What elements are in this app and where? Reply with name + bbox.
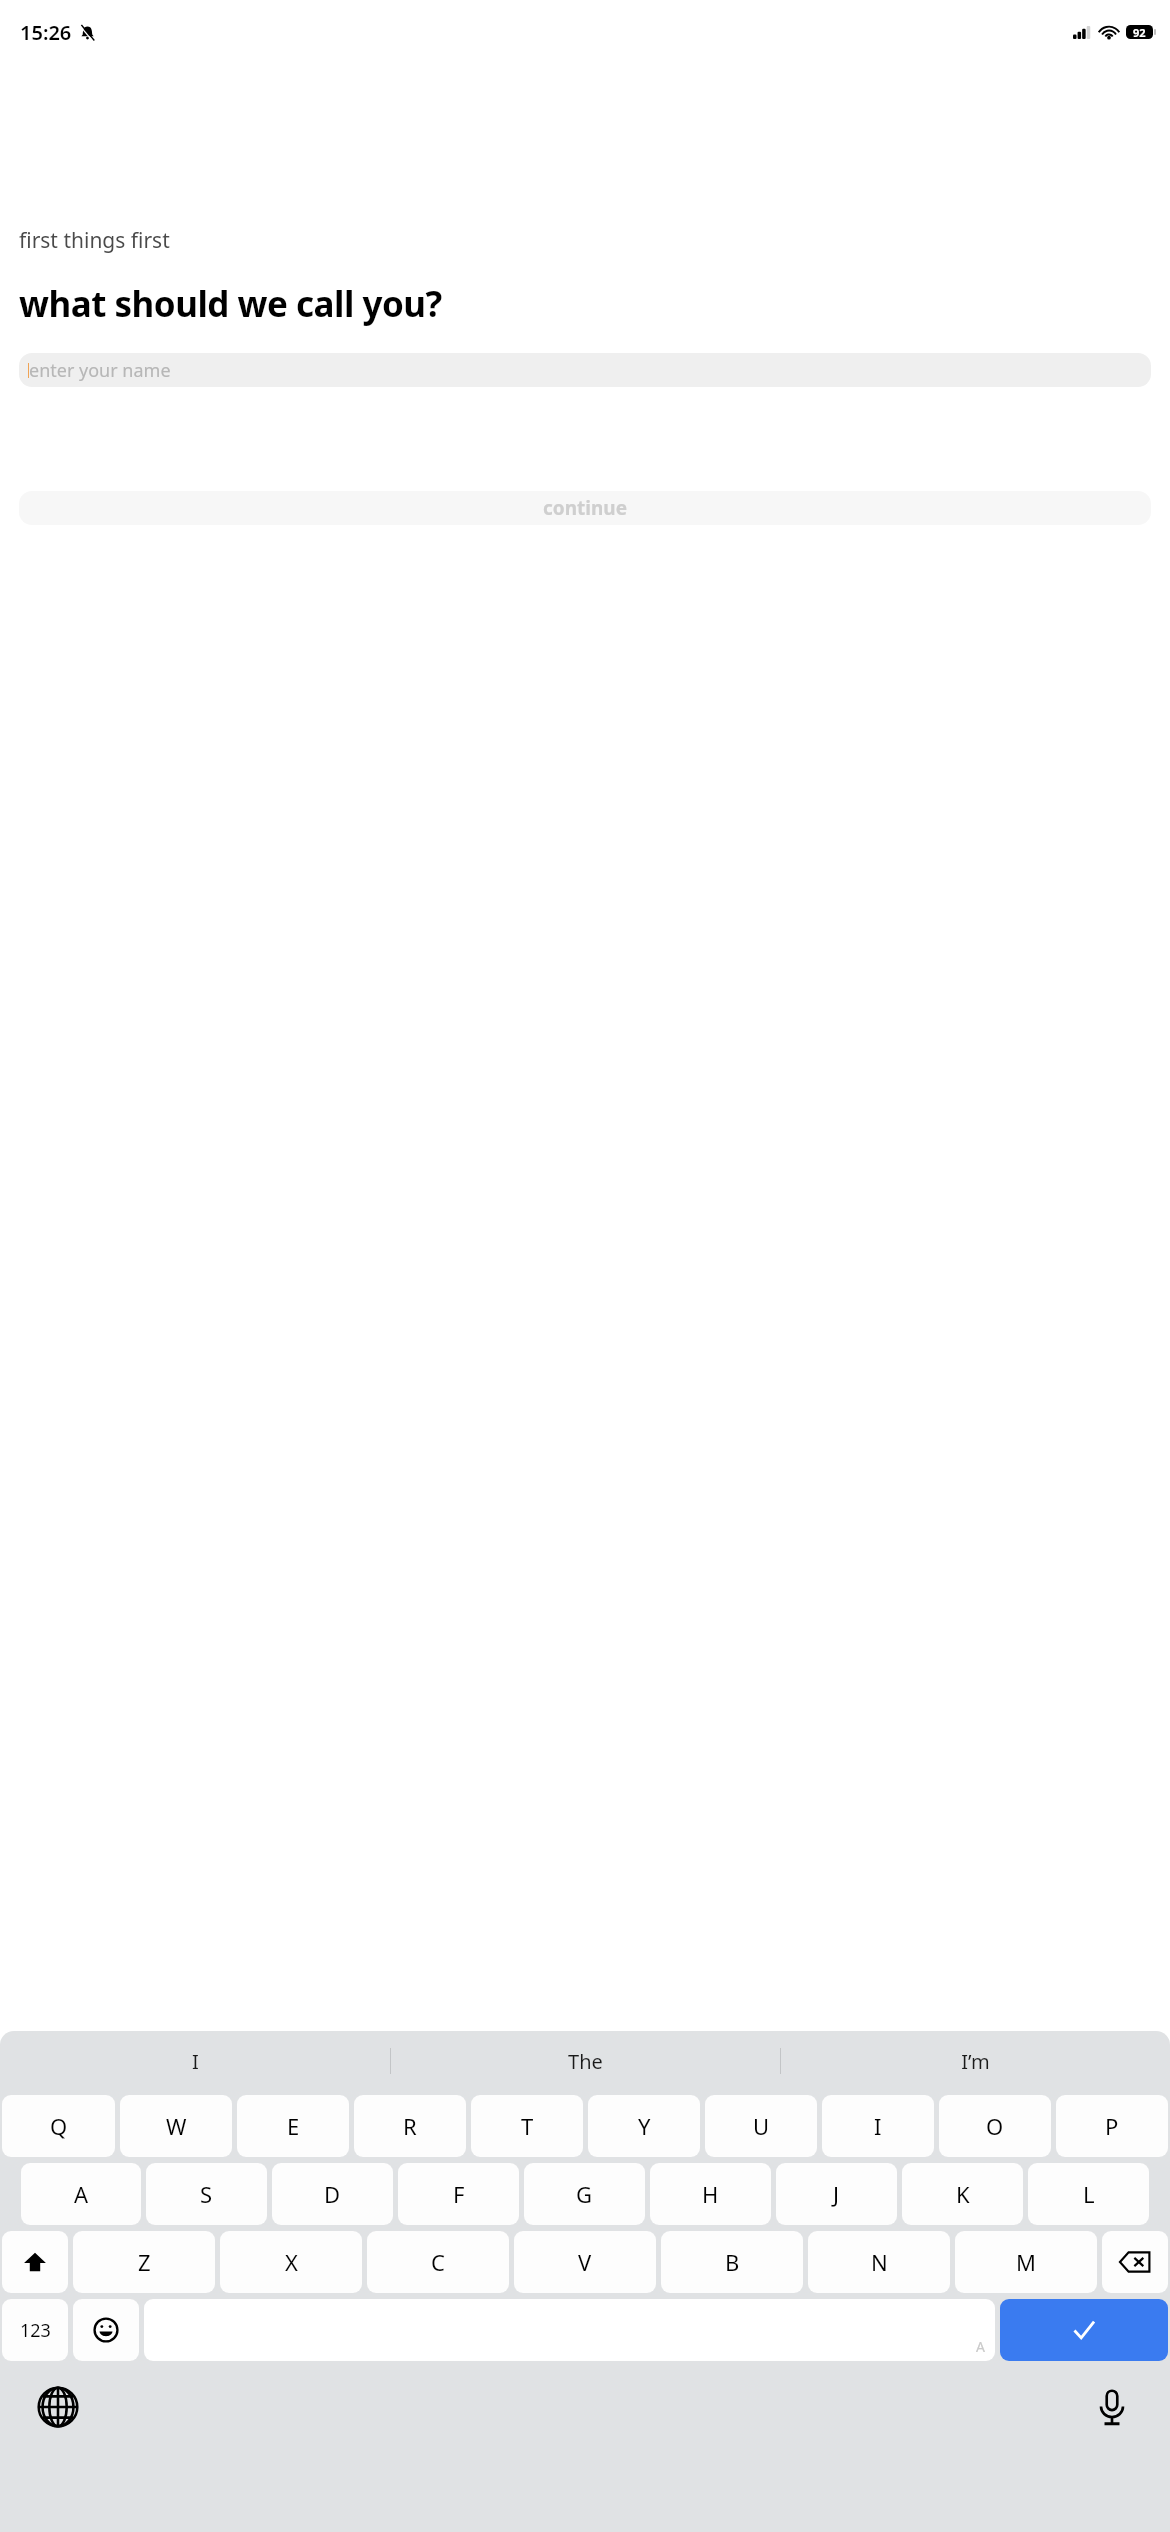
button[interactable]: B xyxy=(661,2231,803,2293)
button[interactable]: N xyxy=(808,2231,950,2293)
button[interactable]: I xyxy=(0,2031,390,2091)
button[interactable]: X xyxy=(220,2231,362,2293)
button[interactable]: J xyxy=(776,2163,897,2225)
staticText: The xyxy=(568,2048,603,2075)
button[interactable]: S xyxy=(146,2163,267,2225)
staticText: C xyxy=(431,2247,445,2277)
button[interactable]: Z xyxy=(73,2231,215,2293)
staticText: A xyxy=(74,2179,89,2209)
button[interactable]: Y xyxy=(588,2095,700,2157)
staticText: N xyxy=(871,2247,888,2277)
staticText: O xyxy=(986,2111,1004,2141)
staticText: A xyxy=(976,2337,985,2356)
staticText: I’m xyxy=(961,2048,990,2075)
button[interactable]: H xyxy=(650,2163,771,2225)
button[interactable]: V xyxy=(514,2231,656,2293)
staticText: E xyxy=(287,2111,300,2141)
button[interactable]: Backspace xyxy=(1102,2231,1168,2293)
staticText: Q xyxy=(50,2111,68,2141)
staticText: V xyxy=(578,2247,592,2277)
button[interactable]: I xyxy=(822,2095,934,2157)
button[interactable]: A xyxy=(21,2163,141,2225)
staticText: H xyxy=(702,2179,719,2209)
button[interactable]: The xyxy=(391,2031,780,2091)
button[interactable]: P xyxy=(1056,2095,1168,2157)
button[interactable]: Enter xyxy=(1000,2299,1168,2361)
staticText: S xyxy=(200,2179,213,2209)
staticText: T xyxy=(521,2111,534,2141)
button[interactable]: enter your name xyxy=(19,353,1151,387)
staticText: M xyxy=(1016,2247,1036,2277)
staticText: I xyxy=(874,2111,882,2141)
button[interactable]: O xyxy=(939,2095,1051,2157)
staticText: K xyxy=(956,2179,970,2209)
staticText: R xyxy=(403,2111,417,2141)
button[interactable]: continue xyxy=(19,491,1151,525)
button[interactable]: F xyxy=(398,2163,519,2225)
button[interactable]: T xyxy=(471,2095,583,2157)
staticText: what should we call you? xyxy=(19,280,442,328)
staticText: I xyxy=(192,2048,199,2075)
button[interactable]: Voice input xyxy=(1084,2379,1140,2435)
button[interactable]: E xyxy=(237,2095,349,2157)
button[interactable]: Emoji xyxy=(73,2299,139,2361)
button[interactable]: W xyxy=(120,2095,232,2157)
staticText: B xyxy=(725,2247,740,2277)
button[interactable]: Q xyxy=(2,2095,115,2157)
button[interactable]: L xyxy=(1028,2163,1149,2225)
staticText: X xyxy=(285,2247,298,2277)
staticText: W xyxy=(166,2111,187,2141)
button[interactable]: M xyxy=(955,2231,1097,2293)
button[interactable]: Shift xyxy=(2,2231,68,2293)
staticText: L xyxy=(1083,2179,1095,2209)
button[interactable]: U xyxy=(705,2095,817,2157)
staticText: J xyxy=(833,2179,840,2209)
staticText: continue xyxy=(543,495,627,521)
staticText: D xyxy=(324,2179,341,2209)
staticText: first things first xyxy=(19,226,170,255)
staticText: Z xyxy=(138,2247,151,2277)
button[interactable]: C xyxy=(367,2231,509,2293)
staticText: 15:26 xyxy=(20,19,72,46)
staticText: U xyxy=(753,2111,770,2141)
staticText: G xyxy=(576,2179,593,2209)
button[interactable]: G xyxy=(524,2163,645,2225)
staticText: enter your name xyxy=(29,358,171,383)
staticText: 92 xyxy=(1133,25,1146,39)
staticText: F xyxy=(453,2179,465,2209)
button[interactable]: D xyxy=(272,2163,393,2225)
staticText: Y xyxy=(638,2111,651,2141)
staticText: 123 xyxy=(20,2318,51,2343)
button[interactable]: K xyxy=(902,2163,1023,2225)
button[interactable]: I’m xyxy=(781,2031,1170,2091)
button[interactable]: 123 xyxy=(2,2299,68,2361)
button[interactable]: Change language xyxy=(30,2379,86,2435)
staticText: P xyxy=(1105,2111,1119,2141)
button[interactable]: R xyxy=(354,2095,466,2157)
